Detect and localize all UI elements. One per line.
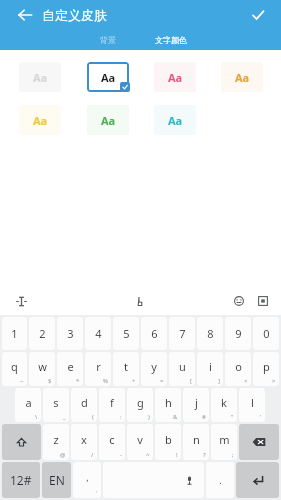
staticText: g xyxy=(137,395,144,410)
button[interactable]: p xyxy=(253,352,279,386)
staticText: i xyxy=(209,359,212,374)
button[interactable]: g xyxy=(127,388,153,422)
staticText: ( xyxy=(92,413,94,421)
button[interactable]: e xyxy=(57,352,83,386)
button[interactable]: Aa xyxy=(17,60,63,93)
button[interactable]: 2 xyxy=(29,317,55,350)
button[interactable]: Handwriting xyxy=(130,290,152,312)
button[interactable]: v xyxy=(127,424,153,460)
staticText: 8 xyxy=(207,326,214,341)
staticText: * xyxy=(76,377,80,385)
staticText: _ xyxy=(63,413,66,421)
button[interactable]: m xyxy=(211,424,237,460)
staticText: f xyxy=(110,395,114,410)
staticText: 7 xyxy=(179,326,186,341)
button[interactable]: f xyxy=(99,388,125,422)
button[interactable]: 1 xyxy=(2,317,27,350)
staticText: = xyxy=(160,377,164,385)
staticText: o xyxy=(235,359,242,374)
staticText: ' xyxy=(260,413,262,421)
button[interactable]: 9 xyxy=(225,317,251,350)
staticText: " xyxy=(231,413,234,421)
staticText: Aa xyxy=(168,113,183,128)
button[interactable]: n xyxy=(183,424,209,460)
staticText: < xyxy=(244,377,248,385)
staticText: c xyxy=(109,432,115,447)
staticText: / xyxy=(91,451,94,459)
button[interactable]: Aa xyxy=(152,103,198,136)
button[interactable]: 背景 xyxy=(82,30,134,50)
staticText: \ xyxy=(35,413,38,421)
button[interactable]: 3 xyxy=(57,317,83,350)
button[interactable]: s xyxy=(43,388,69,422)
button[interactable]: Keyboard settings xyxy=(253,291,273,311)
button[interactable]: o xyxy=(225,352,251,386)
button[interactable]: l xyxy=(239,388,265,422)
button[interactable]: 5 xyxy=(113,317,139,350)
staticText: b xyxy=(165,432,172,447)
staticText: u xyxy=(179,359,186,374)
button[interactable]: b xyxy=(155,424,181,460)
button[interactable]: z xyxy=(43,424,69,460)
button[interactable]: u xyxy=(169,352,195,386)
staticText: % xyxy=(103,377,108,385)
staticText: q xyxy=(11,359,18,374)
button[interactable]: Backspace xyxy=(239,424,279,460)
button[interactable]: 文字颜色 xyxy=(142,30,200,50)
staticText: 5 xyxy=(123,326,130,341)
button[interactable]: t xyxy=(113,352,139,386)
button[interactable]: Cursor xyxy=(10,290,32,312)
button[interactable]: q xyxy=(2,352,27,386)
button[interactable]: j xyxy=(183,388,209,422)
button[interactable]: Aa xyxy=(85,60,131,93)
button[interactable]: h xyxy=(155,388,181,422)
button[interactable]: c xyxy=(99,424,125,460)
button[interactable]: Back xyxy=(8,0,42,30)
staticText: : xyxy=(120,413,122,421)
button[interactable]: Shift xyxy=(2,424,41,460)
button[interactable]: Aa xyxy=(17,103,63,136)
staticText: Aa xyxy=(101,113,116,128)
button[interactable]: Enter xyxy=(236,462,279,498)
button[interactable]: EN xyxy=(42,462,71,498)
staticText: z xyxy=(53,432,59,447)
staticText: ' xyxy=(96,489,98,497)
staticText: [ xyxy=(190,377,192,385)
staticText: ] xyxy=(218,377,220,385)
staticText: Aa xyxy=(235,70,250,85)
button[interactable]: Emoji xyxy=(229,291,249,311)
button[interactable]: Confirm xyxy=(243,0,273,30)
button[interactable]: 6 xyxy=(141,317,167,350)
button[interactable]: Space xyxy=(103,462,204,498)
staticText: Aa xyxy=(33,70,48,85)
staticText: ! xyxy=(176,451,178,459)
button[interactable]: 4 xyxy=(85,317,111,350)
staticText: - xyxy=(120,451,122,459)
button[interactable]: Aa xyxy=(219,60,265,93)
button[interactable]: i xyxy=(197,352,223,386)
button[interactable]: r xyxy=(85,352,111,386)
button[interactable]: , xyxy=(73,462,101,498)
button[interactable]: a xyxy=(15,388,41,422)
button[interactable]: k xyxy=(211,388,237,422)
button[interactable]: w xyxy=(29,352,55,386)
staticText: 0 xyxy=(263,326,270,341)
staticText: 1 xyxy=(11,326,18,341)
staticText: 文字颜色 xyxy=(155,35,187,45)
button[interactable]: . xyxy=(206,462,234,498)
staticText: ; xyxy=(232,451,234,459)
button[interactable]: 8 xyxy=(197,317,223,350)
button[interactable]: 0 xyxy=(253,317,279,350)
staticText: 4 xyxy=(95,326,102,341)
button[interactable]: d xyxy=(71,388,97,422)
button[interactable]: Aa xyxy=(152,60,198,93)
staticText: & xyxy=(173,413,178,421)
staticText: m xyxy=(219,432,230,447)
staticText: 2 xyxy=(39,326,46,341)
staticText: ^ xyxy=(146,451,150,459)
button[interactable]: 7 xyxy=(169,317,195,350)
button[interactable]: y xyxy=(141,352,167,386)
button[interactable]: x xyxy=(71,424,97,460)
button[interactable]: Aa xyxy=(85,103,131,136)
button[interactable]: 12# xyxy=(2,462,40,498)
